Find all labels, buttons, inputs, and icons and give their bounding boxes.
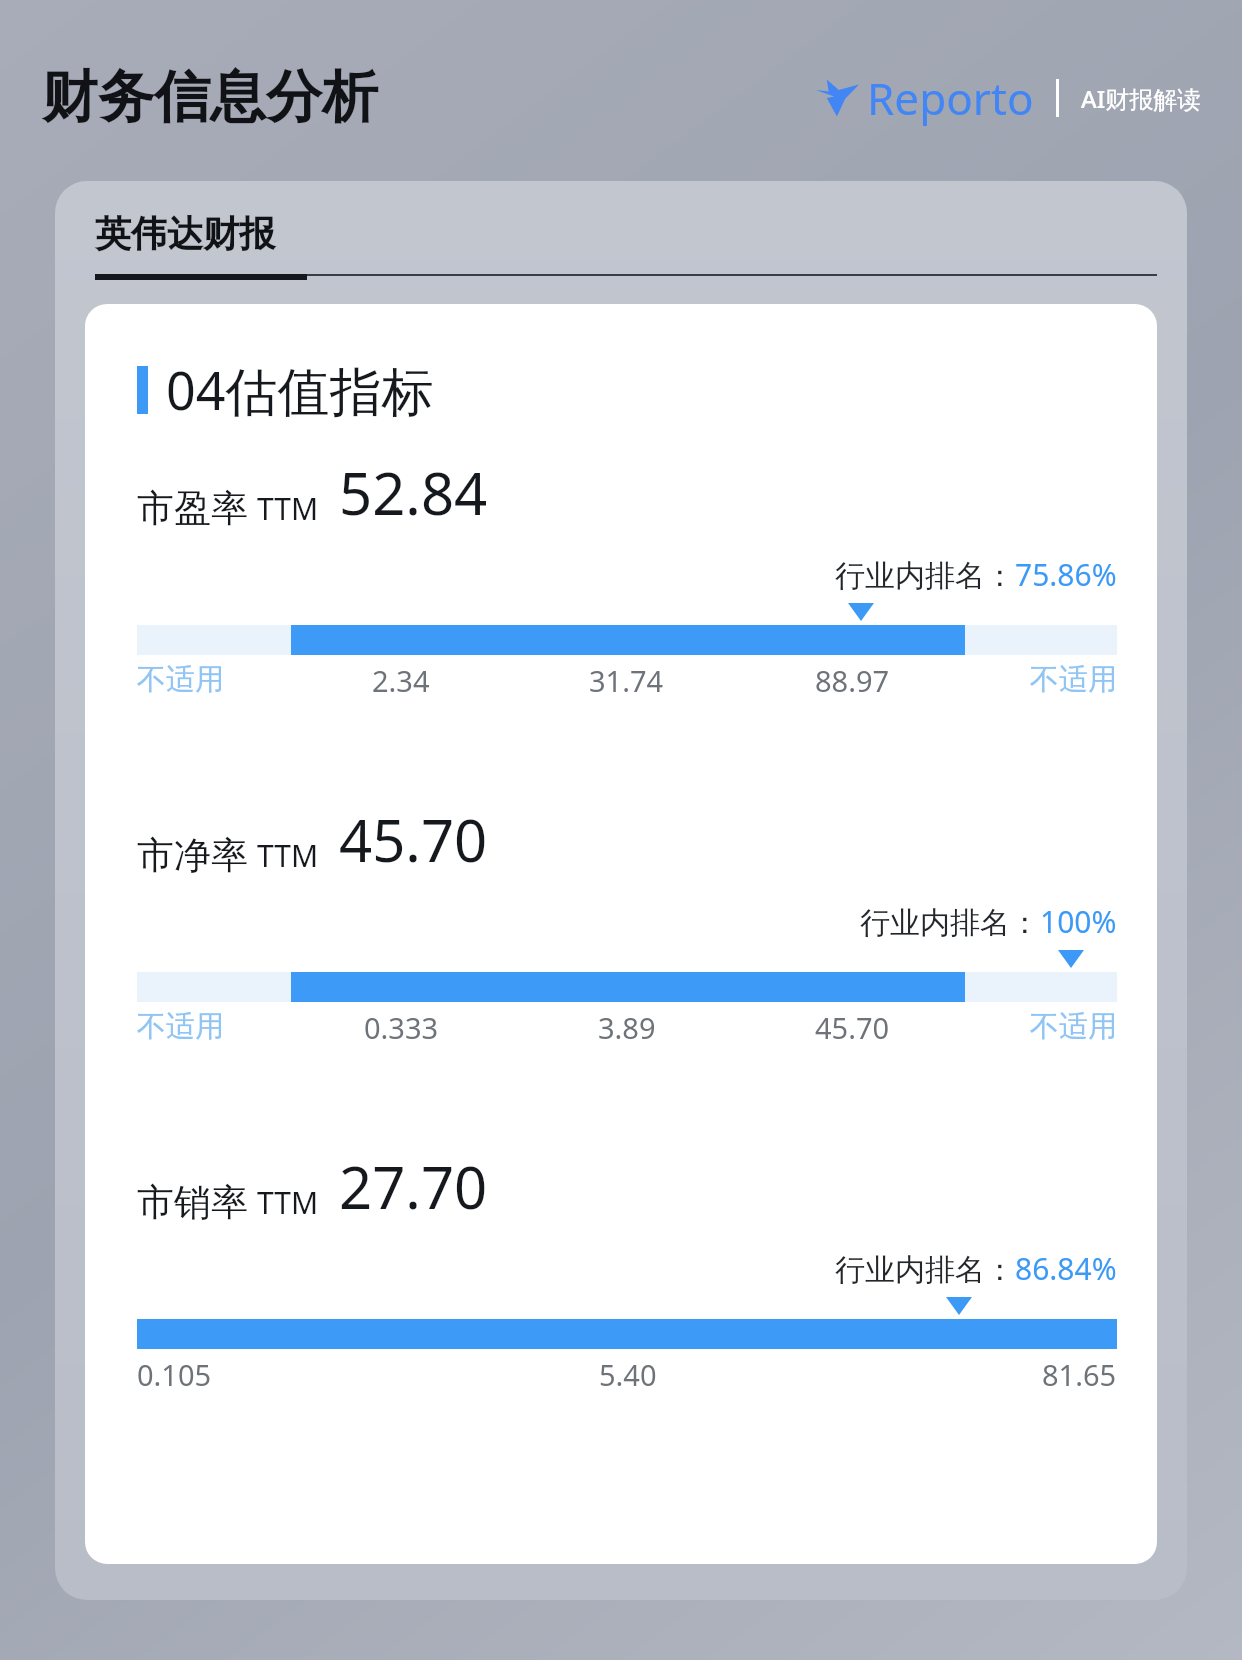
- staticText: 行业内排名：: [835, 1251, 1015, 1289]
- staticText: 不适用: [1030, 1008, 1117, 1045]
- button[interactable]: 英伟达财报: [95, 211, 1157, 280]
- staticText: 市净率: [137, 832, 248, 879]
- button[interactable]: Reporto logo: [813, 68, 1202, 128]
- staticText: AI财报解读: [1081, 82, 1202, 115]
- staticText: TTM: [257, 1182, 319, 1223]
- staticText: 市盈率: [137, 485, 248, 532]
- staticText: 0.105: [137, 1355, 212, 1394]
- staticText: 市销率: [137, 1179, 248, 1226]
- staticText: 81.65: [1042, 1355, 1117, 1394]
- staticText: 2.34: [372, 661, 430, 700]
- staticText: Reporto: [867, 68, 1034, 128]
- staticText: 45.70: [815, 1008, 890, 1047]
- staticText: 04估值指标: [166, 354, 434, 425]
- staticText: 88.97: [815, 661, 890, 700]
- staticText: 86.84%: [1015, 1248, 1117, 1289]
- staticText: 不适用: [137, 661, 224, 698]
- staticText: 0.333: [364, 1008, 439, 1047]
- other: Reporto logo: [813, 78, 859, 118]
- staticText: 不适用: [137, 1008, 224, 1045]
- staticText: 45.70: [339, 800, 488, 879]
- staticText: TTM: [257, 488, 319, 529]
- staticText: 31.74: [589, 661, 664, 700]
- staticText: 27.70: [339, 1147, 488, 1226]
- staticText: 75.86%: [1015, 554, 1117, 595]
- staticText: TTM: [257, 835, 319, 876]
- staticText: 5.40: [599, 1355, 657, 1394]
- staticText: 英伟达财报: [95, 211, 275, 256]
- staticText: 100%: [1040, 901, 1117, 942]
- staticText: 财务信息分析: [42, 62, 378, 133]
- staticText: 行业内排名：: [860, 904, 1040, 942]
- staticText: 3.89: [598, 1008, 656, 1047]
- staticText: 不适用: [1030, 661, 1117, 698]
- staticText: 行业内排名：: [835, 557, 1015, 595]
- staticText: 52.84: [339, 453, 488, 532]
